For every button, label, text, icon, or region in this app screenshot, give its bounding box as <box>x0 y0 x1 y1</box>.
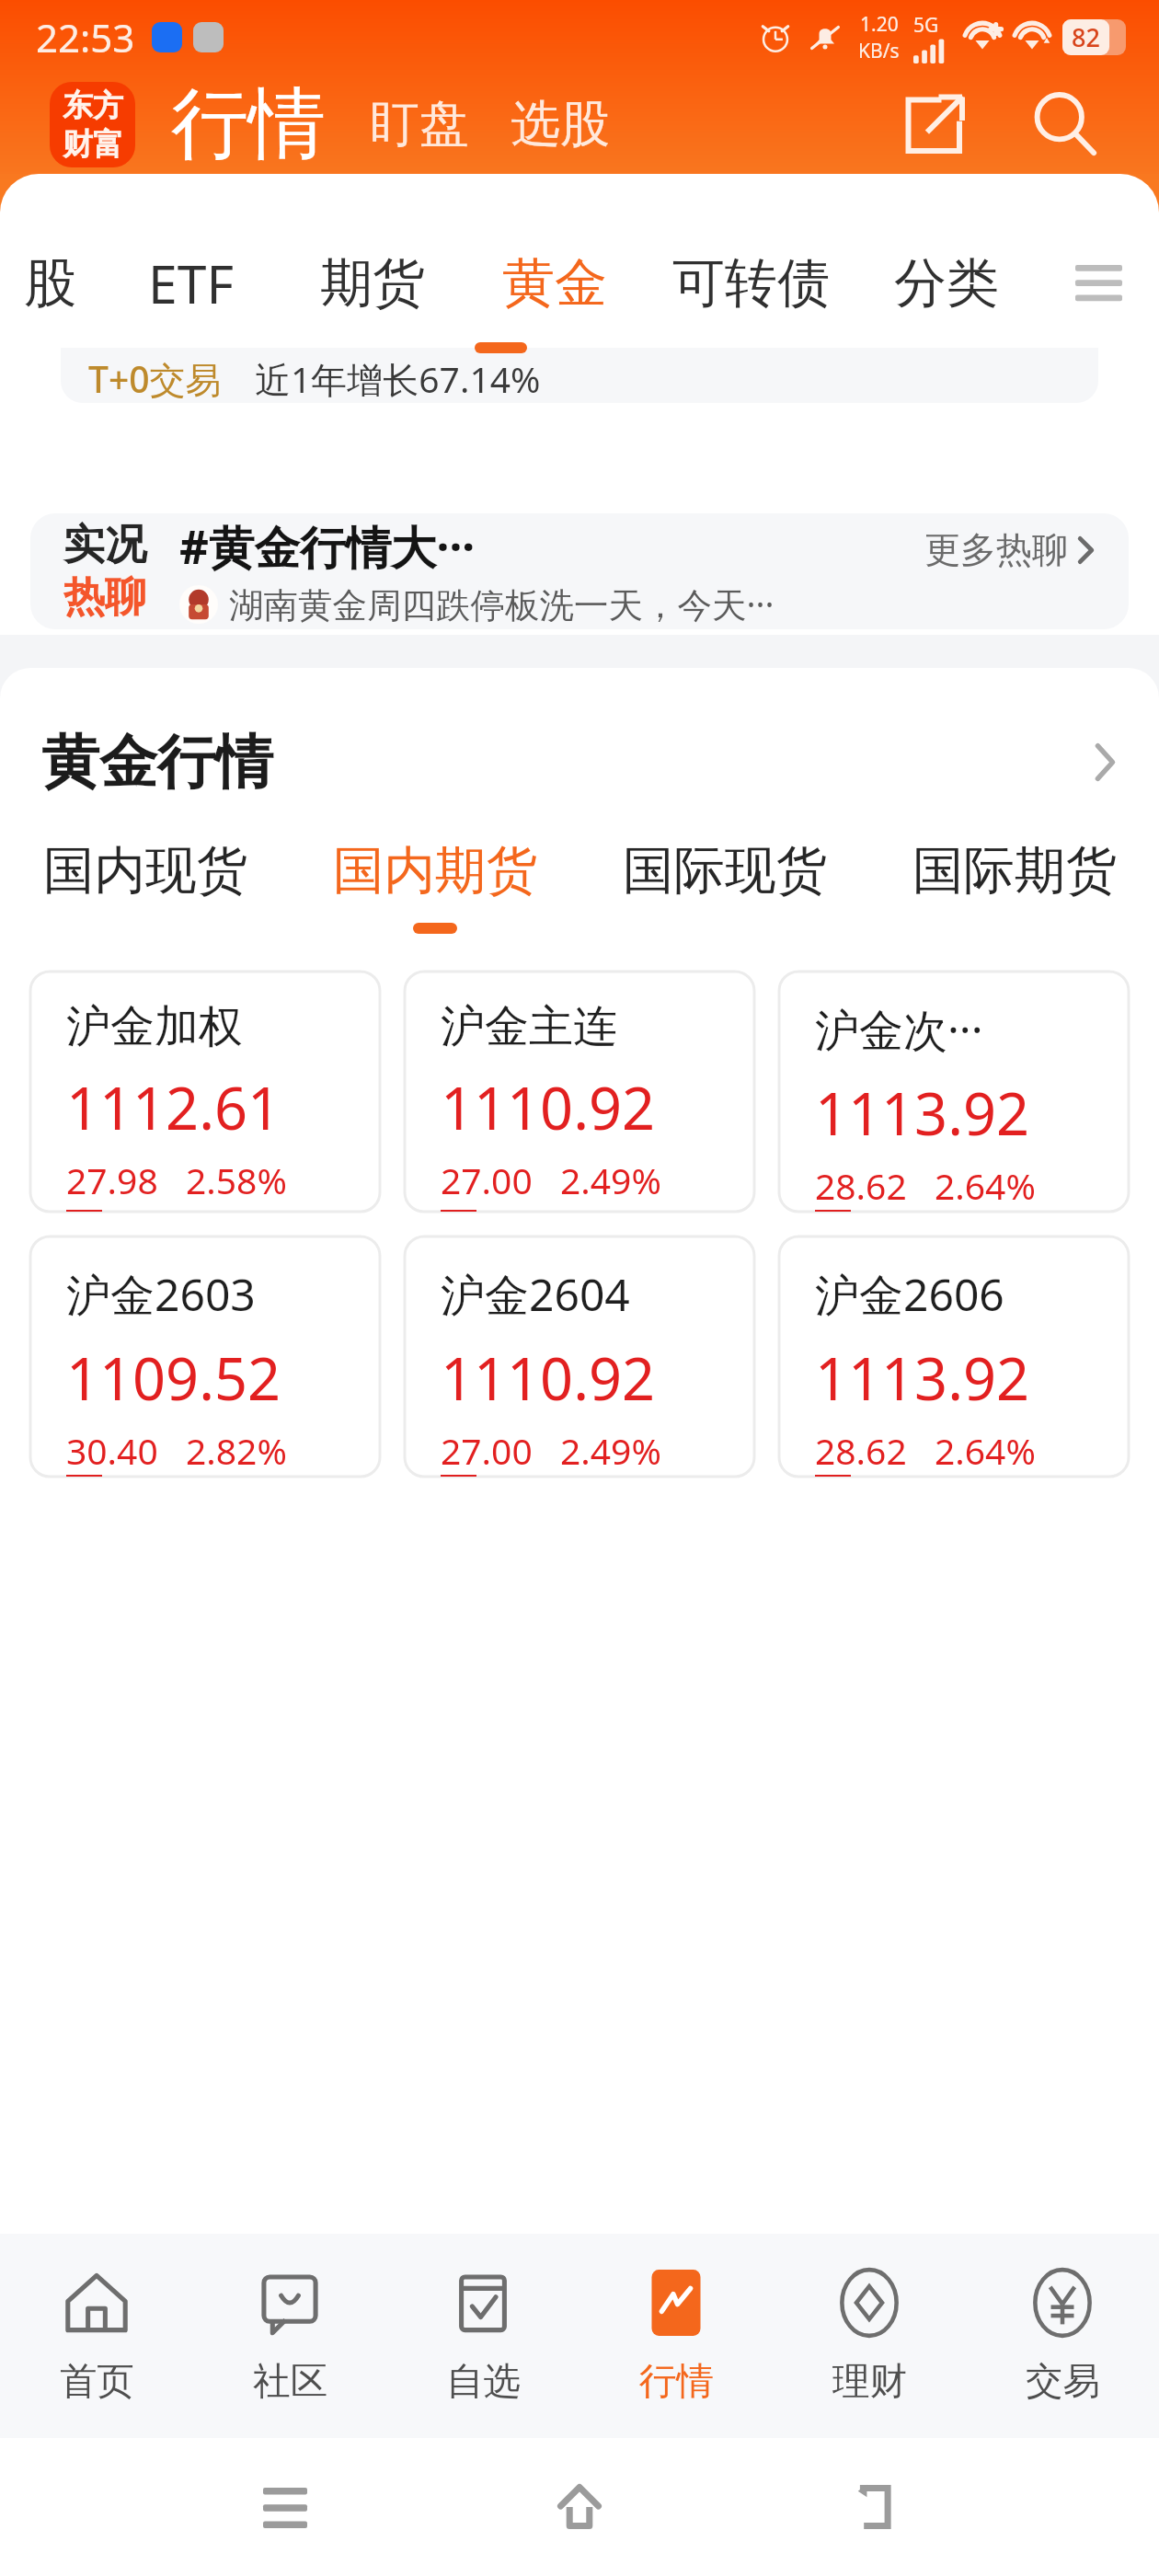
staticText: 黄金 <box>502 250 607 316</box>
button[interactable]: 黄金行情 <box>0 709 1159 814</box>
staticText: 国际现货 <box>623 839 827 903</box>
button[interactable]: 社区 <box>193 2234 386 2438</box>
button[interactable]: 国际现货 <box>579 839 869 944</box>
staticText: 期货 <box>320 250 425 316</box>
button[interactable]: Home <box>519 2446 640 2568</box>
button[interactable]: 黄金 <box>464 218 646 348</box>
staticText: 2.64% <box>935 1426 1036 1475</box>
staticText: 30.40 <box>66 1426 158 1475</box>
button[interactable]: 实况 <box>30 513 1129 629</box>
staticText: 股 <box>24 250 76 316</box>
button[interactable]: 行情 <box>579 2234 773 2438</box>
staticText: T+0交易 <box>88 354 222 403</box>
staticText: 沪金2603 <box>66 1264 256 1325</box>
button[interactable]: 沪金2604 <box>405 1236 754 1477</box>
staticText: 国内现货 <box>43 839 247 903</box>
staticText: 28.62 <box>815 1426 907 1475</box>
button[interactable]: 选股 <box>511 93 610 155</box>
staticText: 国际期货 <box>912 839 1117 903</box>
staticText: 1113.92 <box>815 1074 1030 1153</box>
staticText: 近1年增长67.14% <box>255 354 541 403</box>
button[interactable]: 国内期货 <box>290 839 579 944</box>
button[interactable]: 交易 <box>966 2234 1159 2438</box>
staticText: 1109.52 <box>66 1339 281 1418</box>
staticText: 交易 <box>1026 2358 1100 2405</box>
staticText: 沪金主连 <box>441 999 617 1054</box>
button[interactable]: 盯盘 <box>370 93 469 155</box>
staticText: 1110.92 <box>441 1339 656 1418</box>
staticText: 社区 <box>253 2358 327 2405</box>
staticText: 28.62 <box>815 1161 907 1210</box>
button[interactable]: 国际期货 <box>869 839 1159 944</box>
staticText: 更多热聊 <box>924 527 1068 572</box>
button[interactable]: 行情 <box>171 75 326 173</box>
button[interactable]: 国内现货 <box>0 839 290 944</box>
staticText: 湖南黄金周四跌停板洗一天，今天··· <box>229 581 775 627</box>
staticText: 东方 <box>63 86 123 125</box>
staticText: 27.98 <box>66 1156 158 1204</box>
button[interactable]: 期货 <box>281 218 464 348</box>
staticText: 1110.92 <box>441 1068 656 1147</box>
button[interactable]: 首页 <box>0 2234 193 2438</box>
staticText: 2.49% <box>560 1156 661 1204</box>
staticText: 1.20 <box>860 11 899 38</box>
staticText: 27.00 <box>441 1426 533 1475</box>
staticText: 行情 <box>639 2358 714 2405</box>
button[interactable]: 理财 <box>773 2234 966 2438</box>
staticText: 自选 <box>446 2358 521 2405</box>
staticText: 27.00 <box>441 1156 533 1204</box>
staticText: 分类 <box>894 250 999 316</box>
staticText: 沪金2606 <box>815 1264 1004 1325</box>
button[interactable]: 沪金次··· <box>779 972 1129 1212</box>
button[interactable]: All categories <box>1038 218 1159 348</box>
button[interactable]: East Money <box>50 82 135 167</box>
staticText: 22:53 <box>36 11 135 63</box>
button[interactable]: 沪金主连 <box>405 972 754 1212</box>
staticText: 理财 <box>832 2358 907 2405</box>
staticText: 2.64% <box>935 1161 1036 1210</box>
staticText: 财富 <box>63 125 123 164</box>
staticText: 实况 <box>63 519 146 571</box>
staticText: 2.82% <box>186 1426 287 1475</box>
staticText: 热聊 <box>63 571 146 624</box>
button[interactable]: 沪金2606 <box>779 1236 1129 1477</box>
staticText: 沪金2604 <box>441 1264 630 1325</box>
staticText: ETF <box>148 247 234 319</box>
button[interactable]: 沪金2603 <box>30 1236 380 1477</box>
button[interactable]: ETF <box>99 218 281 348</box>
staticText: 国内期货 <box>333 839 537 903</box>
button[interactable]: Back <box>813 2446 935 2568</box>
button[interactable]: Share <box>883 75 982 174</box>
button[interactable]: Search <box>1016 75 1115 174</box>
staticText: 1113.92 <box>815 1339 1030 1418</box>
staticText: 2.58% <box>186 1156 287 1204</box>
staticText: KB/s <box>858 38 900 64</box>
staticText: #黄金行情大··· <box>179 515 476 578</box>
staticText: 黄金行情 <box>41 726 273 799</box>
staticText: 82 <box>1072 20 1100 54</box>
button[interactable]: 自选 <box>386 2234 579 2438</box>
staticText: 可转债 <box>672 250 830 316</box>
staticText: 1112.61 <box>66 1068 281 1147</box>
button[interactable]: 分类 <box>855 218 1038 348</box>
button[interactable]: 可转债 <box>646 218 855 348</box>
staticText: 2.49% <box>560 1426 661 1475</box>
staticText: 沪金加权 <box>66 999 243 1054</box>
button[interactable]: 沪金加权 <box>30 972 380 1212</box>
button[interactable]: Recent apps <box>224 2446 346 2568</box>
staticText: 首页 <box>60 2358 134 2405</box>
staticText: 5G <box>913 12 939 39</box>
button[interactable]: 股 <box>0 218 99 348</box>
staticText: 沪金次··· <box>815 999 983 1060</box>
